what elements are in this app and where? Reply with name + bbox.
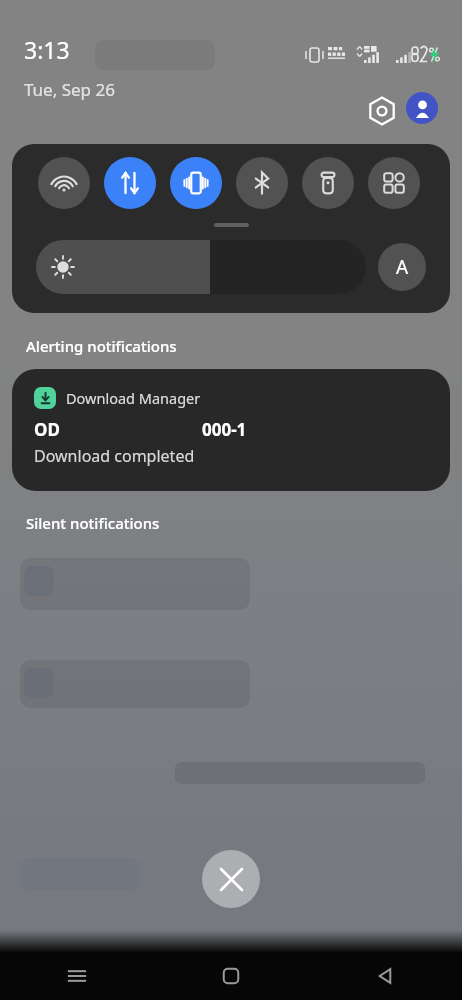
button[interactable] [36, 240, 366, 294]
button[interactable]: Auto brightness [378, 243, 426, 291]
button[interactable]: Vibrate [170, 157, 222, 209]
staticText: 3:13 [24, 34, 70, 65]
button[interactable]: Flashlight [302, 157, 354, 209]
button[interactable]: All settings [368, 157, 420, 209]
staticText: 000-1 [202, 418, 247, 441]
button[interactable]: Back [308, 952, 462, 1000]
staticText: OD [34, 418, 60, 441]
staticText: A [396, 254, 409, 280]
button[interactable]: Recent apps [0, 952, 154, 1000]
staticText: Download Manager [66, 388, 201, 408]
button[interactable]: User profile [406, 92, 438, 124]
button[interactable]: Home [154, 952, 308, 1000]
button[interactable]: Mobile data [104, 157, 156, 209]
staticText: Silent notifications [26, 513, 160, 533]
button[interactable]: Wi-Fi [38, 157, 90, 209]
button[interactable]: Settings [362, 91, 402, 131]
button[interactable]: Clear all notifications [202, 850, 260, 908]
staticText: Alerting notifications [26, 336, 177, 356]
button[interactable]: Download Manager [12, 369, 450, 491]
staticText: Download completed [34, 445, 195, 467]
button[interactable]: Bluetooth [236, 157, 288, 209]
staticText: Tue, Sep 26 [24, 78, 115, 101]
